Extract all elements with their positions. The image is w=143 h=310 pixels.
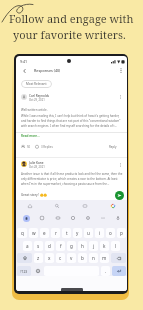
- button[interactable]: l: [111, 241, 120, 251]
- staticText: .: [105, 268, 107, 274]
- button[interactable]: f: [56, 241, 65, 251]
- button[interactable]: tool0: [34, 213, 50, 223]
- button[interactable]: a: [23, 241, 32, 251]
- button[interactable]: Most Relevant: [21, 80, 52, 88]
- staticText: z: [37, 255, 40, 261]
- button[interactable]: g: [67, 241, 76, 251]
- button[interactable]: Send: [115, 191, 124, 200]
- staticText: Oct 29, 2021: [29, 98, 45, 102]
- button[interactable]: y: [73, 228, 82, 238]
- button[interactable]: h: [78, 241, 87, 251]
- button[interactable]: t: [62, 228, 71, 238]
- staticText: h: [81, 243, 84, 249]
- button[interactable]: Google: [99, 200, 127, 212]
- staticText: n: [92, 255, 95, 261]
- staticText: x: [48, 255, 51, 261]
- button[interactable]: z: [34, 253, 43, 263]
- button[interactable]: Comment options: [118, 94, 123, 99]
- staticText: w: [32, 230, 36, 236]
- button[interactable]: Enter: [112, 266, 126, 276]
- staticText: Another issue is that if all these produ…: [21, 172, 123, 186]
- button[interactable]: c: [56, 253, 65, 263]
- staticText: While I was reading this, I can’t help b…: [21, 114, 123, 128]
- staticText: Julie Kane: [29, 161, 44, 165]
- button[interactable]: Clipboard: [18, 213, 34, 223]
- button[interactable]: Clap: [21, 145, 25, 149]
- staticText: s: [37, 243, 40, 249]
- button[interactable]: o: [106, 228, 115, 238]
- staticText: Responses (40): [34, 68, 61, 73]
- button[interactable]: Shift: [17, 253, 32, 263]
- button[interactable]: tool4: [95, 213, 110, 223]
- button[interactable]: p: [117, 228, 126, 238]
- button[interactable]: Backspace: [111, 253, 126, 263]
- button[interactable]: s: [34, 241, 43, 251]
- staticText: y: [76, 230, 79, 236]
- staticText: Most Relevant: [26, 82, 47, 86]
- button[interactable]: tool3: [80, 213, 95, 223]
- button[interactable]: m: [100, 253, 109, 263]
- staticText: 50: [27, 145, 31, 149]
- staticText: your favorite writers.: [13, 27, 126, 42]
- button[interactable]: k: [100, 241, 109, 251]
- staticText: t: [66, 230, 68, 236]
- staticText: d: [48, 243, 51, 249]
- staticText: q: [21, 230, 24, 236]
- staticText: Well written article.: [21, 108, 48, 112]
- button[interactable]: r: [51, 228, 60, 238]
- staticText: m: [102, 255, 107, 261]
- button[interactable]: Comment options: [118, 162, 123, 167]
- button[interactable]: u: [84, 228, 93, 238]
- staticText: Follow and engage with: [9, 11, 134, 26]
- staticText: Great story!: [21, 193, 39, 197]
- staticText: j: [93, 243, 95, 249]
- staticText: Oct 28, 2021: [29, 165, 45, 169]
- staticText: f: [60, 243, 62, 249]
- button[interactable]: w: [29, 228, 38, 238]
- staticText: p: [120, 230, 123, 236]
- staticText: Carl Reynolds: [29, 94, 50, 98]
- button[interactable]: Home: [16, 200, 43, 212]
- button[interactable]: d: [45, 241, 54, 251]
- button[interactable]: Emoji: [32, 266, 43, 276]
- button[interactable]: Replies: [35, 145, 39, 149]
- staticText: k: [103, 243, 106, 249]
- staticText: r: [55, 230, 57, 236]
- button[interactable]: tool2: [65, 213, 80, 223]
- staticText: o: [109, 230, 112, 236]
- staticText: ?123: [20, 269, 28, 274]
- staticText: g: [70, 243, 73, 249]
- button[interactable]: Back: [20, 66, 29, 75]
- button[interactable]: b: [78, 253, 87, 263]
- button[interactable]: Read more...: [21, 134, 40, 138]
- button[interactable]: j: [89, 241, 98, 251]
- button[interactable]: v: [67, 253, 76, 263]
- button[interactable]: n: [89, 253, 98, 263]
- button[interactable]: q: [17, 228, 27, 238]
- staticText: u: [87, 230, 90, 236]
- button[interactable]: More options: [116, 66, 125, 75]
- staticText: 3 Replies: [41, 145, 53, 149]
- staticText: l: [115, 243, 117, 249]
- button[interactable]: .: [101, 266, 110, 276]
- button[interactable]: x: [45, 253, 54, 263]
- button[interactable]: i: [95, 228, 104, 238]
- button[interactable]: tool1: [50, 213, 65, 223]
- staticText: 9:41: [20, 59, 28, 64]
- button[interactable]: tool5: [110, 213, 125, 223]
- staticText: b: [81, 255, 84, 261]
- button[interactable]: GIF: [71, 200, 99, 212]
- staticText: c: [59, 255, 62, 261]
- button[interactable]: ?123: [17, 266, 31, 276]
- button[interactable]: Search: [43, 200, 71, 212]
- staticText: v: [70, 255, 73, 261]
- staticText: i: [99, 230, 101, 236]
- staticText: e: [43, 230, 46, 236]
- button[interactable]: e: [40, 228, 49, 238]
- button[interactable]: Reply: [109, 145, 117, 149]
- staticText: a: [26, 243, 29, 249]
